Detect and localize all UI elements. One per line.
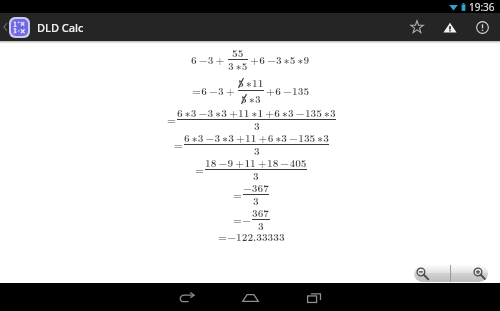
staticText: 5: [238, 76, 244, 90]
staticText: 6 ∗ 3 − 3 ∗ 3 + 11 + 6 ∗ 3 − 135 ∗ 3: [184, 131, 329, 145]
staticText: 3: [254, 144, 260, 158]
staticText: = −122.33333: [216, 230, 285, 244]
staticText: 367: [252, 206, 270, 220]
button[interactable]: Zoom in: [451, 265, 488, 282]
staticText: + 6 − 135: [264, 84, 310, 98]
staticText: =: [165, 113, 177, 127]
button[interactable]: Favourite: [400, 13, 433, 41]
button[interactable]: Warning: [433, 13, 466, 41]
staticText: ∗ 3: [247, 92, 261, 106]
staticText: 6 ∗ 3 − 3 ∗ 3 + 11 ∗ 1 + 6 ∗ 3 − 135 ∗ 3: [177, 106, 336, 120]
staticText: + 6 − 3 ∗ 5 ∗ 9: [248, 53, 310, 67]
staticText: −367: [243, 181, 269, 195]
button[interactable]: Home: [225, 283, 275, 311]
button[interactable]: Back: [161, 283, 211, 311]
staticText: =: [172, 138, 184, 152]
staticText: 55: [232, 46, 244, 60]
staticText: 3 ∗ 5: [228, 59, 248, 73]
staticText: 3: [258, 219, 264, 233]
staticText: =: [193, 163, 205, 177]
staticText: 6 − 3 +: [191, 53, 225, 67]
staticText: = 6 − 3 +: [190, 84, 235, 98]
button[interactable]: App icon: [11, 19, 28, 36]
staticText: 18 − 9 + 11 + 18 − 405: [205, 156, 307, 170]
staticText: 3: [253, 194, 259, 208]
staticText: = −: [231, 213, 252, 227]
staticText: ∗ 11: [244, 76, 264, 90]
staticText: 19:36: [469, 0, 495, 13]
button[interactable]: Recent apps: [289, 283, 339, 311]
staticText: DLD Calc: [37, 20, 84, 35]
staticText: =: [231, 188, 243, 202]
button[interactable]: Info: [466, 13, 499, 41]
staticText: 5: [241, 92, 247, 106]
button[interactable]: Zoom out: [414, 265, 450, 282]
staticText: 3: [253, 169, 259, 183]
staticText: 3: [254, 119, 260, 133]
